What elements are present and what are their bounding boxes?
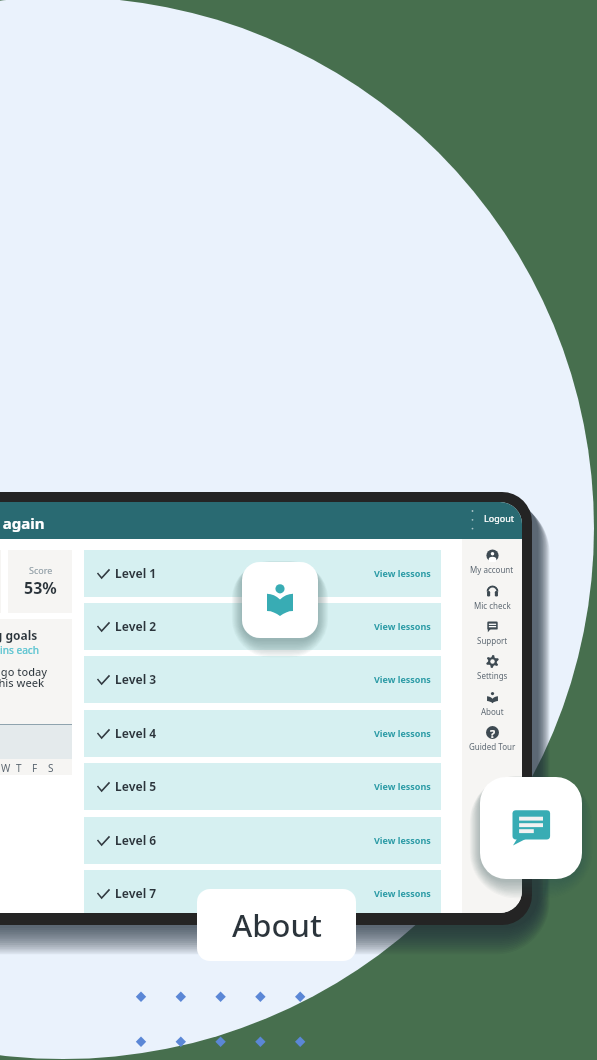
button[interactable]: Level 1 bbox=[84, 550, 441, 597]
staticText: Level 4 bbox=[115, 725, 157, 741]
staticText: Mic check bbox=[474, 600, 511, 611]
staticText: Welcome back, great to see you again bbox=[0, 513, 45, 533]
button[interactable]: Mic check bbox=[462, 585, 522, 618]
button[interactable]: Level 7 bbox=[84, 870, 441, 913]
staticText: About bbox=[232, 904, 322, 946]
button[interactable]: Level 5 bbox=[84, 763, 441, 810]
button[interactable]: Settings bbox=[462, 655, 522, 688]
staticText: Settings bbox=[477, 670, 508, 681]
button[interactable]: About bbox=[462, 691, 522, 724]
staticText: S bbox=[48, 761, 54, 775]
staticText: W bbox=[1, 761, 11, 775]
staticText: Logout bbox=[484, 512, 514, 524]
staticText: Level 6 bbox=[115, 832, 157, 848]
staticText: My account bbox=[470, 564, 514, 575]
staticText: View lessons bbox=[374, 727, 431, 739]
button[interactable]: Level 2 bbox=[84, 603, 441, 650]
button[interactable]: About bbox=[197, 889, 356, 961]
staticText: View lessons bbox=[374, 567, 431, 579]
button[interactable]: More options bbox=[470, 509, 475, 532]
staticText: View lessons bbox=[374, 780, 431, 792]
button[interactable]: Logout bbox=[484, 512, 514, 524]
button[interactable]: Support bbox=[462, 620, 522, 653]
staticText: ? bbox=[490, 726, 496, 739]
button[interactable]: My account bbox=[462, 549, 522, 582]
staticText: Guided Tour bbox=[469, 741, 516, 752]
staticText: 3 sessions of 10 mins each bbox=[0, 643, 40, 657]
staticText: View lessons bbox=[374, 620, 431, 632]
staticText: Level 1 bbox=[115, 565, 157, 581]
staticText: Support bbox=[477, 635, 508, 646]
staticText: T bbox=[16, 761, 22, 775]
button[interactable]: Level 6 bbox=[84, 817, 441, 864]
staticText: 2 more sessions to go today bbox=[0, 664, 48, 679]
staticText: F bbox=[32, 761, 38, 775]
staticText: View lessons bbox=[374, 887, 431, 899]
button[interactable]: ? bbox=[462, 726, 522, 759]
button[interactable]: Support chat bbox=[480, 777, 582, 879]
staticText: Score bbox=[29, 564, 53, 576]
staticText: Your weekly learning goals bbox=[0, 627, 38, 643]
button[interactable]: Lessons bbox=[242, 562, 318, 638]
staticText: Level 3 bbox=[115, 671, 157, 687]
staticText: 53% bbox=[24, 577, 57, 599]
staticText: View lessons bbox=[374, 834, 431, 846]
staticText: Level 7 bbox=[115, 885, 157, 901]
staticText: View lessons bbox=[374, 673, 431, 685]
staticText: Level 5 bbox=[115, 778, 157, 794]
staticText: About bbox=[481, 706, 504, 717]
staticText: 5 more sessions to go this week bbox=[0, 675, 45, 690]
button[interactable]: Level 4 bbox=[84, 710, 441, 757]
button[interactable]: Level 3 bbox=[84, 656, 441, 703]
staticText: Level 2 bbox=[115, 618, 157, 634]
